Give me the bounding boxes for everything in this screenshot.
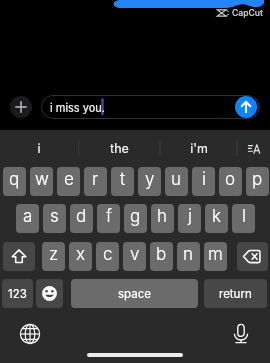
- staticText: x: [76, 244, 86, 265]
- staticText: y: [145, 169, 155, 190]
- button[interactable]: i'm: [160, 130, 237, 167]
- button[interactable]: Add attachment: [10, 96, 32, 118]
- button[interactable]: p: [246, 167, 269, 196]
- staticText: m: [208, 244, 223, 265]
- button[interactable]: v: [123, 242, 146, 271]
- button[interactable]: d: [70, 204, 93, 233]
- staticText: o: [225, 169, 236, 190]
- button[interactable]: f: [97, 204, 120, 233]
- button[interactable]: Send: [235, 96, 257, 118]
- staticText: f: [106, 206, 112, 227]
- button[interactable]: x: [69, 242, 92, 271]
- staticText: w: [35, 169, 49, 190]
- button[interactable]: u: [165, 167, 188, 196]
- staticText: a: [23, 206, 33, 227]
- button[interactable]: o: [219, 167, 242, 196]
- staticText: the: [110, 141, 129, 156]
- button[interactable]: b: [150, 242, 173, 271]
- staticText: CapCut: [232, 8, 263, 18]
- staticText: n: [183, 244, 194, 265]
- button[interactable]: h: [151, 204, 174, 233]
- button[interactable]: the: [78, 130, 160, 167]
- staticText: l: [242, 206, 246, 227]
- button[interactable]: Backspace: [237, 242, 268, 271]
- button[interactable]: t: [111, 167, 134, 196]
- staticText: v: [130, 244, 140, 265]
- staticText: q: [9, 169, 20, 190]
- staticText: b: [156, 244, 167, 265]
- button[interactable]: g: [124, 204, 147, 233]
- staticText: h: [157, 206, 168, 227]
- staticText: j: [188, 206, 192, 227]
- button[interactable]: s: [43, 204, 66, 233]
- staticText: t: [120, 169, 126, 190]
- staticText: s: [50, 206, 59, 227]
- staticText: k: [212, 206, 221, 227]
- button[interactable]: Dictation: [229, 322, 253, 346]
- button[interactable]: y: [138, 167, 161, 196]
- button[interactable]: w: [30, 167, 53, 196]
- staticText: i'm: [190, 141, 208, 156]
- button[interactable]: Shift: [3, 242, 35, 271]
- staticText: i: [202, 169, 206, 190]
- button[interactable]: Emoji keyboard: [36, 279, 63, 308]
- staticText: space: [118, 287, 151, 301]
- button[interactable]: z: [42, 242, 65, 271]
- button[interactable]: Switch keyboard language: [18, 322, 42, 346]
- button[interactable]: e: [57, 167, 80, 196]
- button[interactable]: m: [204, 242, 227, 271]
- staticText: z: [49, 244, 59, 265]
- staticText: c: [103, 244, 113, 265]
- staticText: d: [76, 206, 87, 227]
- staticText: e: [64, 169, 74, 190]
- staticText: p: [252, 169, 263, 190]
- staticText: r: [92, 169, 99, 190]
- staticText: i miss you.: [50, 101, 105, 114]
- button[interactable]: a: [16, 204, 39, 233]
- button[interactable]: q: [3, 167, 26, 196]
- staticText: g: [130, 206, 141, 227]
- staticText: return: [219, 287, 252, 301]
- button[interactable]: Text formatting options: [237, 130, 270, 167]
- button[interactable]: n: [177, 242, 200, 271]
- button[interactable]: l: [232, 204, 255, 233]
- button[interactable]: j: [178, 204, 201, 233]
- button[interactable]: return: [204, 279, 267, 308]
- button[interactable]: c: [96, 242, 119, 271]
- button[interactable]: k: [205, 204, 228, 233]
- button[interactable]: r: [84, 167, 107, 196]
- button[interactable]: space: [71, 279, 198, 308]
- button[interactable]: i miss you.: [41, 95, 260, 119]
- staticText: 123: [8, 287, 27, 301]
- button[interactable]: 123: [2, 279, 33, 308]
- staticText: u: [171, 169, 182, 190]
- staticText: i: [37, 141, 41, 156]
- button[interactable]: i: [0, 130, 78, 167]
- button[interactable]: i: [192, 167, 215, 196]
